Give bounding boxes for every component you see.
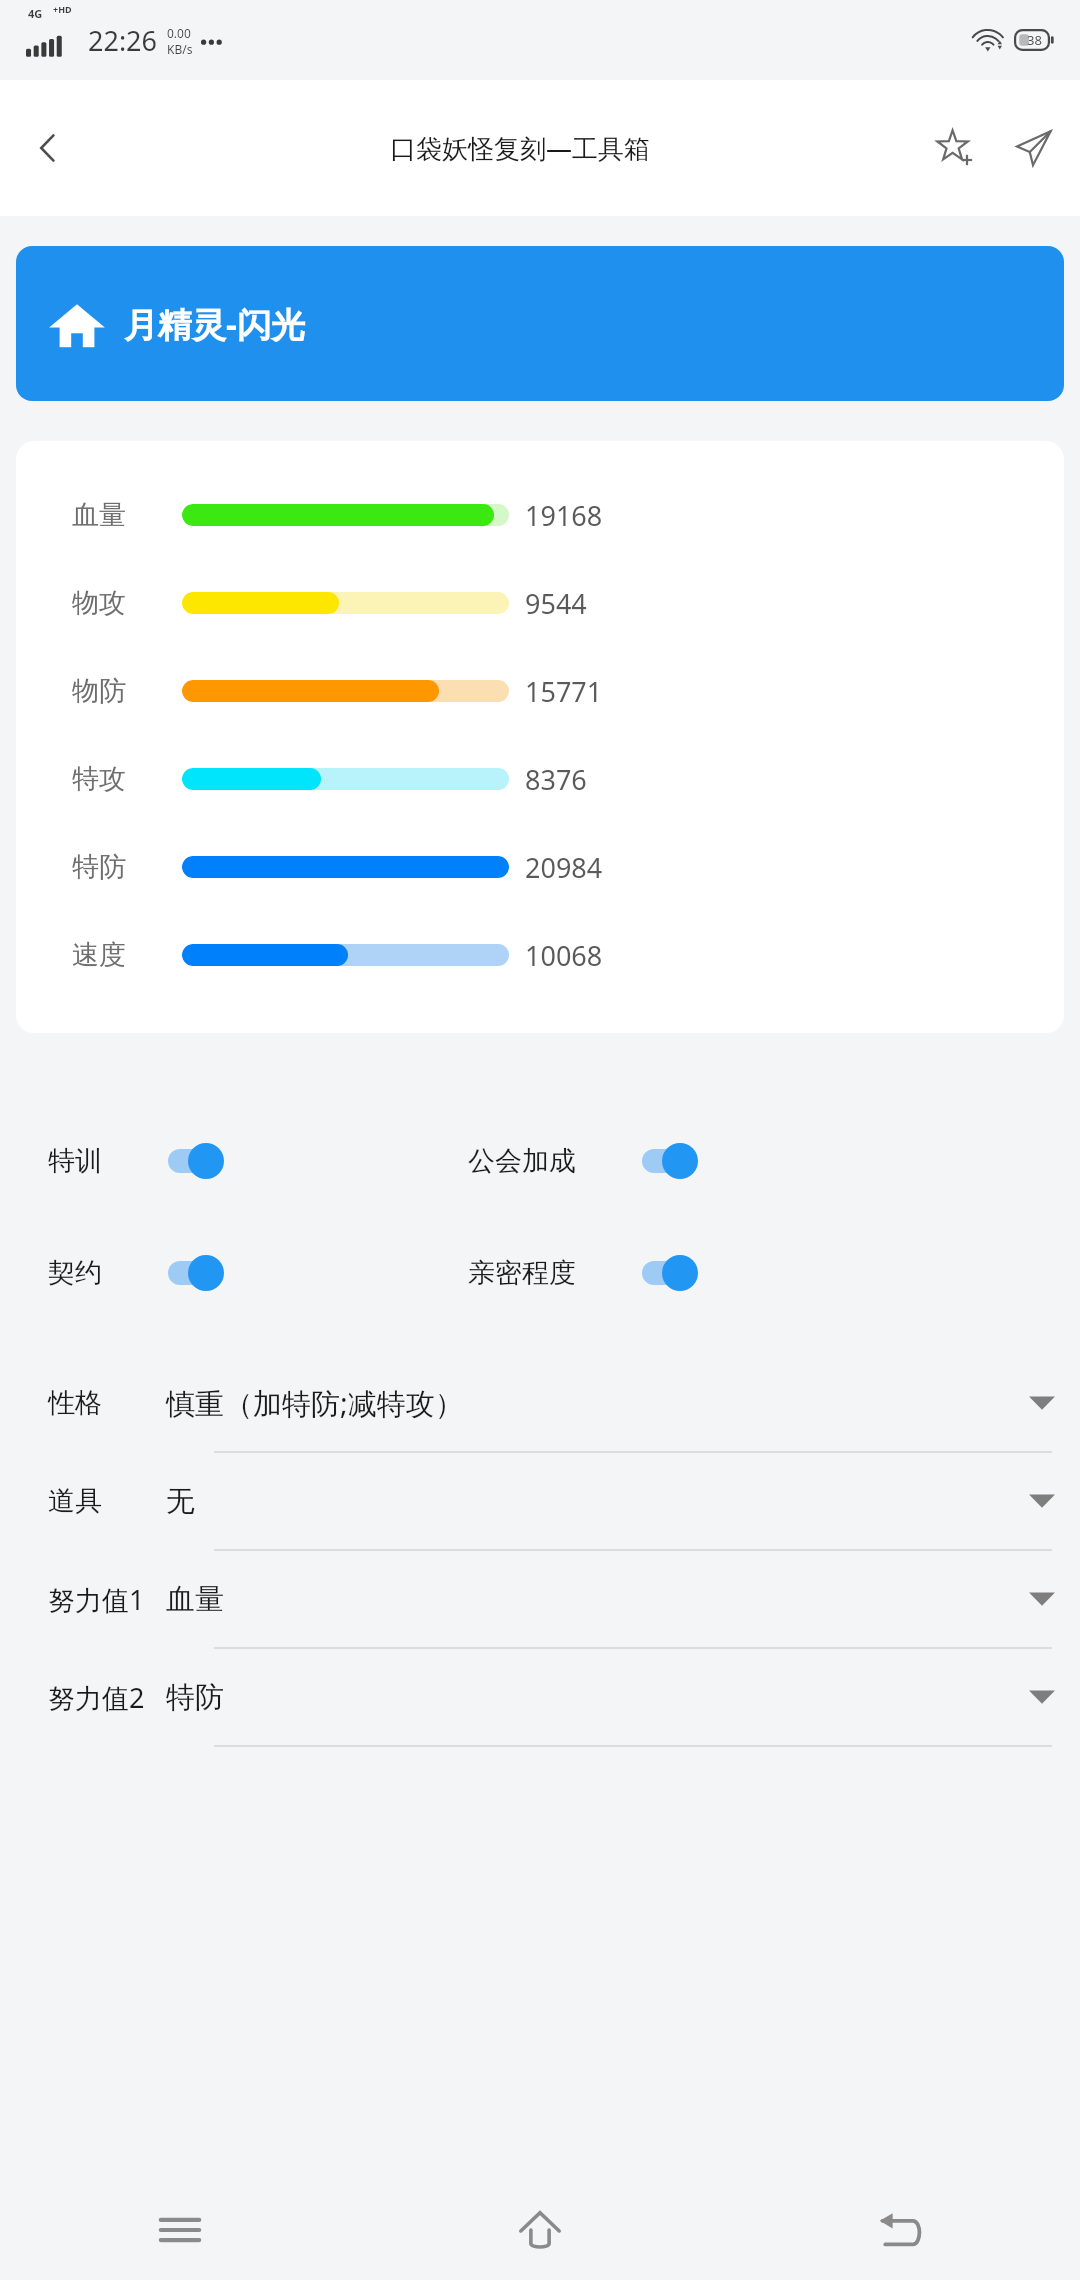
button[interactable]: 努力值2 [0,1649,1080,1747]
staticText: 8376 [525,761,587,798]
button[interactable]: Home [360,2180,720,2280]
staticText: 道具 [48,1484,102,1518]
button[interactable]: 性格 [0,1355,1080,1453]
staticText: 38 [1027,31,1042,49]
staticText: 特攻 [72,762,126,796]
staticText: 慎重（加特防;减特攻） [166,1383,464,1423]
button[interactable]: 努力值1 [0,1551,1080,1649]
staticText: 契约 [48,1256,102,1290]
staticText: 血量 [166,1581,224,1618]
button[interactable]: 亲密程度 [468,1217,700,1329]
staticText: 口袋妖怪复刻—工具箱 [390,130,651,166]
button[interactable]: Add to favourites [918,111,992,185]
staticText: 努力值2 [48,1679,145,1716]
button[interactable]: Recent apps [0,2180,360,2280]
staticText: +HD [53,3,72,15]
staticText: 19168 [525,497,603,534]
staticText: 月精灵-闪光 [124,301,305,347]
staticText: 物防 [72,674,126,708]
staticText: 特防 [166,1679,224,1716]
button[interactable]: Back [720,2180,1080,2280]
button[interactable]: 月精灵-闪光 [16,246,1064,401]
staticText: 努力值1 [48,1581,145,1618]
staticText: 公会加成 [468,1144,576,1178]
staticText: 特训 [48,1144,102,1178]
staticText: 血量 [72,498,126,532]
staticText: 10068 [525,937,603,974]
button[interactable]: 特训 [48,1105,226,1217]
staticText: 0.00 [167,25,191,41]
button[interactable]: Share [996,111,1070,185]
button[interactable]: 契约 [48,1217,226,1329]
button[interactable]: 公会加成 [468,1105,700,1217]
staticText: 4G [28,6,43,21]
staticText: 22:26 [88,22,158,59]
staticText: 9544 [525,585,587,622]
staticText: 特防 [72,850,126,884]
staticText: 速度 [72,938,126,972]
staticText: KB/s [167,41,193,57]
staticText: 亲密程度 [468,1256,576,1290]
staticText: 15771 [525,673,603,710]
staticText: 性格 [48,1386,102,1420]
staticText: 无 [166,1483,195,1520]
staticText: 20984 [525,849,603,886]
button[interactable]: 道具 [0,1453,1080,1551]
staticText: 物攻 [72,586,126,620]
button[interactable]: Back [12,112,84,184]
